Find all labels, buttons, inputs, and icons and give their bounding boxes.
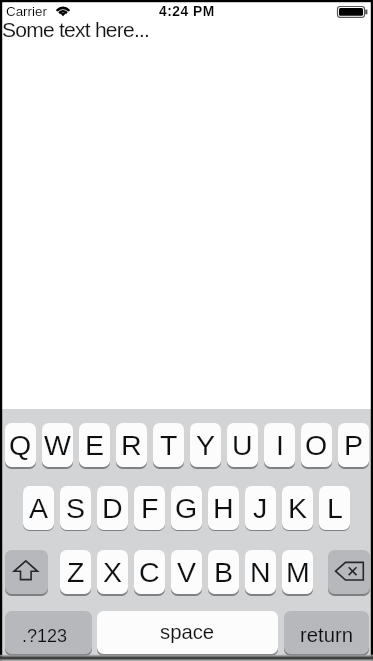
button[interactable]	[328, 550, 370, 594]
button[interactable]: G	[171, 486, 202, 530]
button[interactable]: C	[134, 550, 165, 594]
staticText: T	[160, 429, 178, 461]
staticText: Z	[67, 556, 85, 588]
staticText: return	[300, 624, 354, 647]
staticText: K	[288, 492, 308, 524]
button[interactable]: Z	[60, 550, 91, 594]
staticText: B	[214, 556, 234, 588]
button[interactable]: K	[282, 486, 313, 530]
button[interactable]: H	[208, 486, 239, 530]
staticText: S	[66, 492, 86, 524]
button[interactable]: U	[227, 423, 258, 467]
staticText: D	[102, 492, 123, 524]
staticText: N	[250, 556, 271, 588]
button[interactable]: I	[264, 423, 295, 467]
button[interactable]: D	[97, 486, 128, 530]
button[interactable]: return	[284, 611, 369, 654]
button[interactable]: space	[97, 611, 278, 654]
staticText: F	[141, 492, 159, 524]
staticText: Some text here...	[2, 18, 150, 41]
button[interactable]: Y	[190, 423, 221, 467]
button[interactable]: O	[301, 423, 332, 467]
button[interactable]: V	[171, 550, 202, 594]
staticText: A	[29, 492, 49, 524]
button[interactable]: X	[97, 550, 128, 594]
button[interactable]: M	[282, 550, 313, 594]
button[interactable]: T	[153, 423, 184, 467]
staticText: M	[286, 556, 310, 588]
staticText: G	[175, 492, 198, 524]
staticText: W	[44, 429, 71, 461]
button[interactable]: Q	[5, 423, 36, 467]
staticText: P	[344, 429, 364, 461]
staticText: J	[253, 492, 268, 524]
staticText: Q	[9, 429, 32, 461]
button[interactable]: J	[245, 486, 276, 530]
staticText: I	[276, 429, 284, 461]
staticText: U	[232, 429, 253, 461]
staticText: Y	[196, 429, 216, 461]
button[interactable]: L	[319, 486, 350, 530]
staticText: R	[121, 429, 142, 461]
button[interactable]	[5, 550, 48, 594]
staticText: 4:24 PM	[159, 4, 215, 19]
staticText: Carrier	[6, 4, 47, 19]
staticText: L	[327, 492, 343, 524]
button[interactable]: B	[208, 550, 239, 594]
staticText: C	[139, 556, 160, 588]
staticText: space	[160, 621, 215, 644]
button[interactable]: E	[79, 423, 110, 467]
staticText: V	[177, 556, 197, 588]
staticText: E	[85, 429, 105, 461]
button[interactable]: P	[338, 423, 369, 467]
staticText: H	[213, 492, 234, 524]
button[interactable]: S	[60, 486, 91, 530]
button[interactable]: R	[116, 423, 147, 467]
button[interactable]: F	[134, 486, 165, 530]
button[interactable]: N	[245, 550, 276, 594]
button[interactable]: W	[42, 423, 73, 467]
button[interactable]: A	[23, 486, 54, 530]
staticText: X	[103, 556, 123, 588]
staticText: O	[305, 429, 328, 461]
button[interactable]: .?123	[5, 611, 92, 654]
staticText: .?123	[22, 626, 68, 646]
